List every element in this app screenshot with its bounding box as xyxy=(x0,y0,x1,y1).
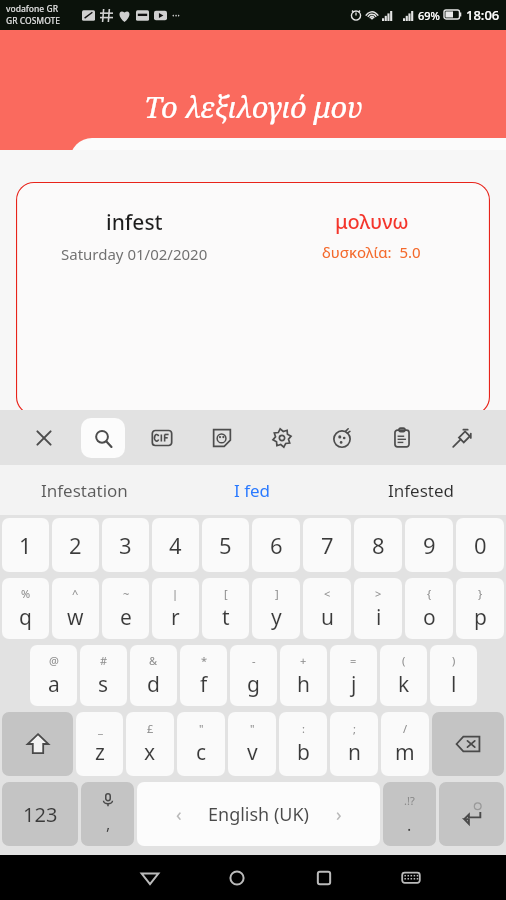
button[interactable]: 7 xyxy=(303,518,351,572)
staticText: & xyxy=(149,653,158,668)
staticText: m xyxy=(395,738,415,767)
button[interactable]: _ xyxy=(76,712,123,776)
button[interactable]: 123 xyxy=(2,782,78,846)
button[interactable]: Emoji xyxy=(312,410,372,465)
staticText: w xyxy=(67,603,84,632)
button[interactable]: ; xyxy=(330,712,378,776)
button[interactable]: / xyxy=(381,712,429,776)
staticText: # xyxy=(100,653,108,668)
button[interactable]: infest xyxy=(16,182,490,415)
button[interactable]: GIF xyxy=(132,410,192,465)
staticText: μολυνω xyxy=(335,208,409,235)
button[interactable]: 2 xyxy=(52,518,99,572)
button[interactable]: = xyxy=(330,645,377,706)
staticText: r xyxy=(171,603,180,632)
button[interactable]: [ xyxy=(202,578,249,639)
staticText: = xyxy=(350,653,357,668)
staticText: _ xyxy=(98,721,103,736)
button[interactable]: Home xyxy=(193,855,280,900)
button[interactable]: ^ xyxy=(52,578,99,639)
staticText: | xyxy=(172,586,179,601)
button[interactable]: # xyxy=(80,645,127,706)
button[interactable]: Search xyxy=(81,418,125,458)
button[interactable]: Settings xyxy=(252,410,312,465)
staticText: 123 xyxy=(23,801,58,828)
button[interactable]: } xyxy=(456,578,504,639)
button[interactable]: Stickers xyxy=(192,410,252,465)
staticText: ··· xyxy=(172,8,181,22)
button[interactable]: Infested xyxy=(337,465,506,515)
button[interactable]: Voice input and comma xyxy=(81,782,134,846)
button[interactable]: ‹ xyxy=(137,782,380,846)
staticText: Infestation xyxy=(41,479,128,502)
staticText: " xyxy=(250,721,255,736)
button[interactable]: & xyxy=(130,645,177,706)
button[interactable]: < xyxy=(303,578,351,639)
staticText: + xyxy=(300,653,307,668)
staticText: h xyxy=(297,670,310,699)
button[interactable]: " xyxy=(228,712,276,776)
button[interactable]: 9 xyxy=(405,518,453,572)
button[interactable]: > xyxy=(354,578,402,639)
staticText: , xyxy=(106,813,111,835)
staticText: ; xyxy=(353,721,356,736)
staticText: x xyxy=(144,738,156,767)
button[interactable]: ) xyxy=(430,645,477,706)
button[interactable]: Infes xyxy=(70,138,506,182)
staticText: q xyxy=(19,603,32,632)
button[interactable]: Hide keyboard xyxy=(367,855,454,900)
button[interactable]: + xyxy=(280,645,327,706)
button[interactable]: I fed xyxy=(168,465,337,515)
button[interactable]: * xyxy=(180,645,227,706)
staticText: . xyxy=(407,814,412,836)
staticText: ~ xyxy=(123,586,130,601)
staticText: % xyxy=(21,586,31,601)
button[interactable]: 5 xyxy=(202,518,249,572)
button[interactable]: 1 xyxy=(2,518,49,572)
button[interactable]: ( xyxy=(380,645,427,706)
staticText: infest xyxy=(106,208,163,237)
staticText: ) xyxy=(452,653,456,668)
button[interactable]: " xyxy=(177,712,225,776)
staticText: i xyxy=(376,603,382,632)
staticText: 0 xyxy=(474,530,487,560)
button[interactable]: Recents xyxy=(280,855,367,900)
staticText: Το λεξιλογιό μου xyxy=(144,87,363,126)
button[interactable]: 4 xyxy=(152,518,199,572)
button[interactable]: : xyxy=(279,712,327,776)
button[interactable]: % xyxy=(2,578,49,639)
button[interactable]: Back xyxy=(106,855,193,900)
staticText: ] xyxy=(275,586,279,601)
button[interactable]: Symbols and period xyxy=(383,782,436,846)
button[interactable]: Enter xyxy=(439,782,504,846)
staticText: e xyxy=(120,603,132,632)
button[interactable]: Pin xyxy=(432,410,492,465)
staticText: 9 xyxy=(423,530,436,560)
button[interactable]: Infestation xyxy=(0,465,168,515)
staticText: > xyxy=(375,586,382,601)
staticText: o xyxy=(423,603,436,632)
button[interactable]: 8 xyxy=(354,518,402,572)
staticText: : xyxy=(302,721,305,736)
staticText: English (UK) xyxy=(208,802,310,827)
button[interactable]: ] xyxy=(252,578,300,639)
staticText: 7 xyxy=(321,530,334,560)
button[interactable]: @ xyxy=(30,645,77,706)
button[interactable]: - xyxy=(230,645,277,706)
staticText: 5 xyxy=(219,530,232,560)
staticText: Infested xyxy=(388,479,455,502)
staticText: Saturday 01/02/2020 xyxy=(61,244,208,264)
button[interactable]: Shift xyxy=(2,712,73,776)
button[interactable]: ~ xyxy=(102,578,149,639)
staticText: l xyxy=(451,670,457,699)
button[interactable]: | xyxy=(152,578,199,639)
button[interactable]: Clipboard xyxy=(372,410,432,465)
button[interactable]: { xyxy=(405,578,453,639)
button[interactable]: Backspace xyxy=(432,712,504,776)
button[interactable]: 3 xyxy=(102,518,149,572)
button[interactable]: £ xyxy=(126,712,174,776)
button[interactable]: 6 xyxy=(252,518,300,572)
button[interactable]: Close xyxy=(14,410,73,465)
button[interactable]: 0 xyxy=(456,518,504,572)
